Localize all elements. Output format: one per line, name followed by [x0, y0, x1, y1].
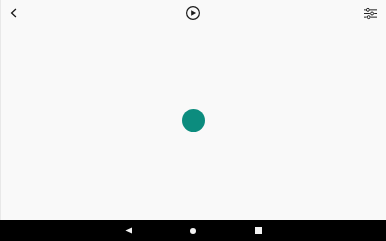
- button[interactable]: Home: [183, 220, 203, 241]
- button[interactable]: Play: [181, 1, 205, 25]
- button[interactable]: Recent apps: [248, 220, 268, 241]
- button[interactable]: Back: [2, 1, 26, 25]
- button[interactable]: Record: [182, 109, 205, 132]
- button[interactable]: Back: [118, 220, 138, 241]
- button[interactable]: Settings: [358, 1, 382, 25]
